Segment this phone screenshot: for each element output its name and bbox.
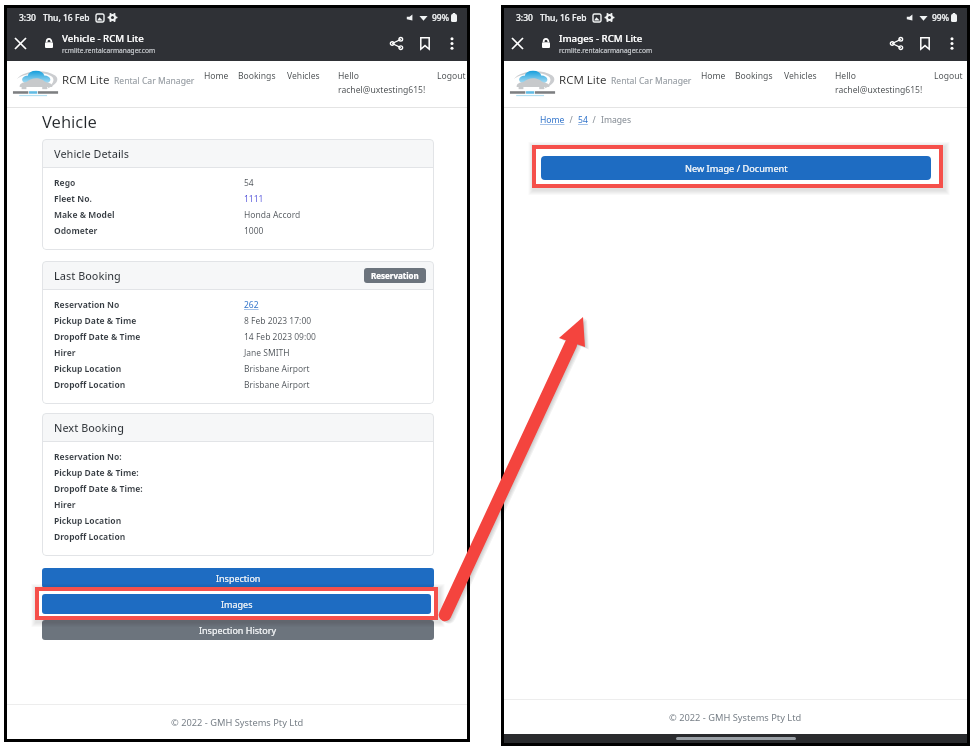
staticText: Honda Accord xyxy=(244,209,301,221)
staticText: Brisbane Airport xyxy=(244,363,310,375)
staticText: Dropoff Location xyxy=(54,531,126,543)
button[interactable]: Close tab xyxy=(506,32,528,54)
staticText: rcmlite.rentalcarmanager.com xyxy=(559,46,653,55)
staticText: / xyxy=(565,114,578,126)
staticText: RCM Lite xyxy=(62,72,110,88)
button[interactable]: Vehicles xyxy=(781,67,820,85)
button[interactable]: Share xyxy=(883,30,909,56)
staticText: © 2022 - GMH Systems Pty Ltd xyxy=(669,711,802,724)
staticText: Vehicles xyxy=(287,70,320,82)
staticText: Vehicle - RCM Lite xyxy=(62,32,144,45)
staticText: Vehicle xyxy=(42,110,97,132)
button[interactable]: Vehicles xyxy=(284,67,323,85)
staticText: rachel@uxtesting615! xyxy=(835,84,923,96)
staticText: Hirer xyxy=(54,499,76,511)
staticText: Reservation No: xyxy=(54,451,122,463)
staticText: Pickup Date & Time: xyxy=(54,467,139,479)
staticText: Home xyxy=(540,114,565,126)
staticText: RCM Lite xyxy=(559,72,607,88)
staticText: Fleet No. xyxy=(54,193,92,205)
staticText: 54 xyxy=(244,177,254,189)
staticText: 54 xyxy=(578,114,588,126)
staticText: Pickup Location xyxy=(54,515,122,527)
button[interactable]: Bookmark xyxy=(912,30,938,56)
button[interactable]: More options xyxy=(439,30,465,56)
staticText: 14 Feb 2023 09:00 xyxy=(244,331,316,343)
staticText: Images xyxy=(221,598,253,610)
staticText: Dropoff Date & Time: xyxy=(54,483,143,495)
staticText: Home xyxy=(701,70,726,82)
button[interactable]: Logout xyxy=(931,67,966,85)
button[interactable]: New Image / Document xyxy=(540,148,934,173)
button[interactable]: Share xyxy=(383,30,409,56)
staticText: Jane SMITH xyxy=(244,347,290,359)
staticText: Hello xyxy=(338,70,359,82)
button[interactable]: Close tab xyxy=(9,32,31,54)
staticText: rcmlite.rentalcarmanager.com xyxy=(62,46,156,55)
staticText: Next Booking xyxy=(54,420,124,435)
staticText: Rental Car Manager xyxy=(114,75,195,87)
staticText: Thu, 16 Feb xyxy=(540,12,587,24)
staticText: Rental Car Manager xyxy=(611,75,692,87)
staticText: Brisbane Airport xyxy=(244,379,310,391)
staticText: Pickup Date & Time xyxy=(54,315,137,327)
staticText: Inspection History xyxy=(199,624,277,636)
staticText: Hello xyxy=(835,70,856,82)
staticText: / xyxy=(588,114,601,126)
staticText: 1000 xyxy=(244,225,264,237)
button[interactable]: Home xyxy=(540,114,565,126)
staticText: Vehicle Details xyxy=(54,146,130,161)
staticText: Logout xyxy=(934,70,963,82)
staticText: 1111 xyxy=(244,193,264,205)
staticText: 99% xyxy=(932,12,949,24)
staticText: Inspection xyxy=(216,572,261,584)
staticText: 99% xyxy=(432,12,449,24)
staticText: Reservation No xyxy=(54,299,120,311)
button[interactable]: Bookings xyxy=(235,67,279,85)
staticText: Home xyxy=(204,70,229,82)
button[interactable]: More options xyxy=(939,30,965,56)
staticText: Last Booking xyxy=(54,268,121,283)
staticText: Logout xyxy=(437,70,466,82)
button[interactable]: Images xyxy=(42,594,434,614)
staticText: Dropoff Date & Time xyxy=(54,331,141,343)
staticText: Vehicles xyxy=(784,70,817,82)
staticText: rachel@uxtesting615! xyxy=(338,84,426,96)
button[interactable]: Inspection History xyxy=(42,620,434,640)
staticText: Images xyxy=(601,114,632,126)
button[interactable]: Hello xyxy=(832,67,926,99)
staticText: Hirer xyxy=(54,347,76,359)
staticText: 262 xyxy=(244,299,259,311)
staticText: Pickup Location xyxy=(54,363,122,375)
staticText: 3:30 xyxy=(516,12,533,24)
button[interactable]: Inspection xyxy=(42,568,434,588)
staticText: 3:30 xyxy=(19,12,36,24)
button[interactable]: RCM Lite home xyxy=(509,64,557,98)
staticText: © 2022 - GMH Systems Pty Ltd xyxy=(171,716,304,729)
button[interactable]: Home xyxy=(201,67,232,85)
staticText: Dropoff Location xyxy=(54,379,126,391)
staticText: Reservation xyxy=(371,270,419,281)
staticText: Bookings xyxy=(735,70,773,82)
staticText: 8 Feb 2023 17:00 xyxy=(244,315,312,327)
button[interactable]: Bookings xyxy=(732,67,776,85)
staticText: Odometer xyxy=(54,225,98,237)
staticText: New Image / Document xyxy=(686,154,789,167)
staticText: Rego xyxy=(54,177,76,189)
button[interactable]: Bookmark xyxy=(412,30,438,56)
button[interactable]: Logout xyxy=(434,67,469,85)
staticText: Images - RCM Lite xyxy=(559,32,643,45)
button[interactable]: Hello xyxy=(335,67,429,99)
button[interactable]: 54 xyxy=(578,114,588,126)
button[interactable]: RCM Lite home xyxy=(12,64,60,98)
staticText: Images xyxy=(222,598,254,610)
staticText: Thu, 16 Feb xyxy=(43,12,90,24)
staticText: New Image / Document xyxy=(685,162,788,175)
staticText: Bookings xyxy=(238,70,276,82)
button[interactable]: Home xyxy=(698,67,729,85)
staticText: Make & Model xyxy=(54,209,115,221)
